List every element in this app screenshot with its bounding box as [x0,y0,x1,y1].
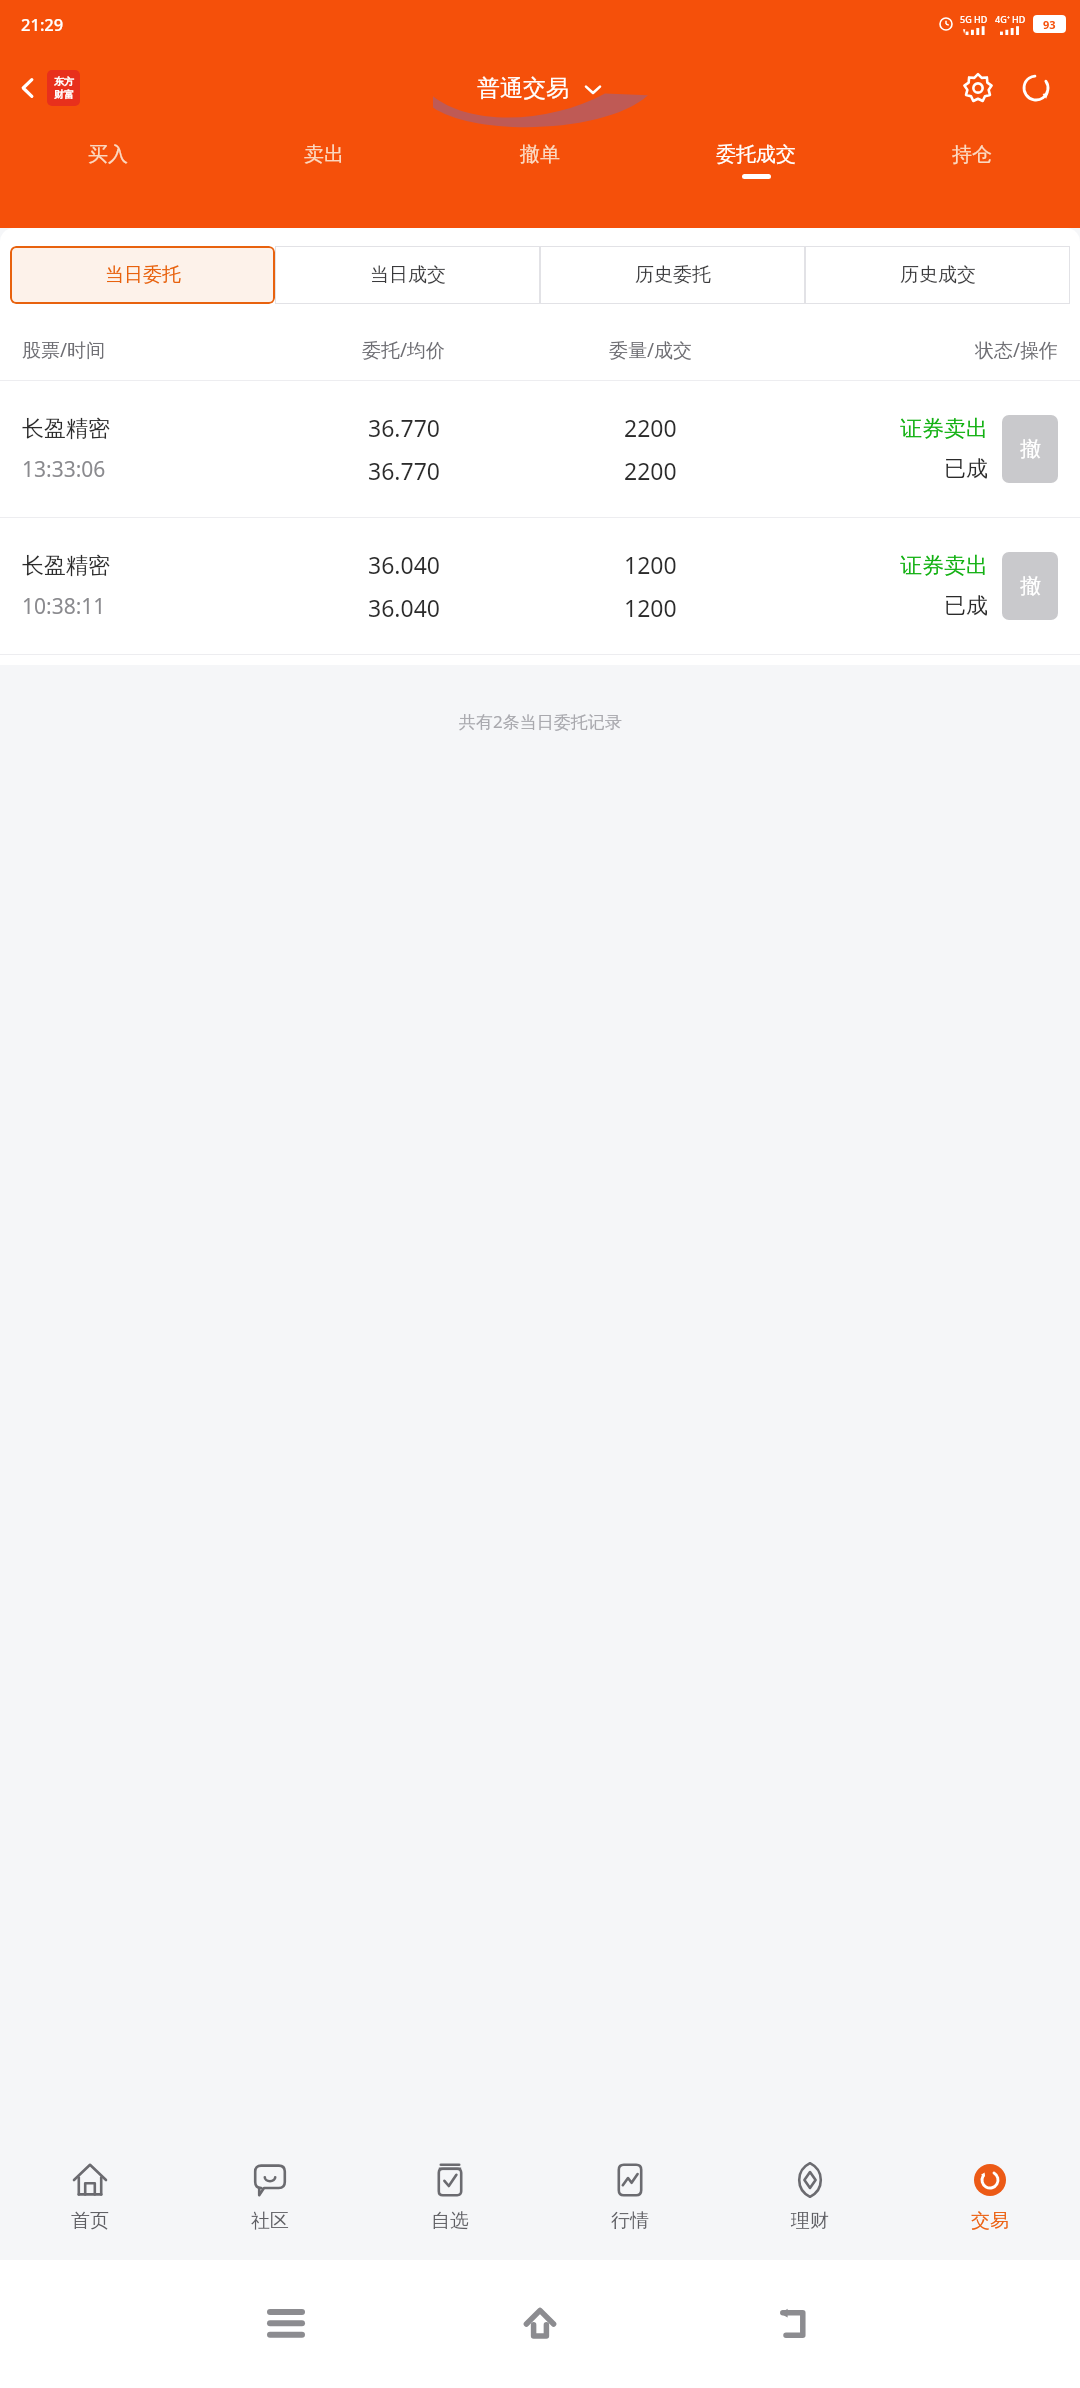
button[interactable]: 历史委托 [540,246,805,304]
staticText: 2200 [624,412,677,443]
button[interactable]: 理财 [720,2132,900,2260]
button[interactable]: 设置 [954,64,1002,112]
button[interactable]: 撤 [1002,552,1058,620]
button[interactable]: 返回 [10,64,86,112]
staticText: 财富 [54,88,74,101]
staticText: 36.040 [368,592,440,623]
staticText: 首页 [71,2209,109,2233]
staticText: 撤 [1020,573,1041,599]
staticText: 卖出 [304,142,344,167]
staticText: 1200 [624,592,677,623]
staticText: 证券卖出 [900,415,988,443]
staticText: 委量/成交 [527,337,774,363]
staticText: 5G [960,13,972,25]
button[interactable]: 委托成交 [648,128,864,228]
button[interactable]: 买入 [0,128,216,228]
staticText: 36.770 [368,455,440,486]
button[interactable]: 主页 [413,2260,667,2388]
staticText: 自选 [431,2209,469,2233]
staticText: 撤单 [520,142,560,167]
staticText: 已成 [944,592,988,620]
staticText: 36.770 [368,412,440,443]
button[interactable]: 首页 [0,2132,180,2260]
staticText: 当日委托 [105,263,181,287]
staticText: 持仓 [952,142,992,167]
staticText: 已成 [944,455,988,483]
staticText: HD [974,13,988,25]
staticText: 10:38:11 [22,592,106,621]
staticText: 委托成交 [716,142,796,167]
staticText: 证券卖出 [900,552,988,580]
staticText: 历史成交 [900,263,976,287]
button[interactable]: 撤单 [432,128,648,228]
staticText: 共有2条当日委托记录 [459,710,622,733]
staticText: 2200 [624,455,677,486]
staticText: 4G⁺ [995,13,1010,25]
staticText: 长盈精密 [22,552,110,580]
staticText: 历史委托 [635,263,711,287]
staticText: 买入 [88,142,128,167]
button[interactable]: 长盈精密 [0,518,1080,654]
button[interactable]: 历史成交 [805,246,1070,304]
staticText: 东方 [54,75,74,88]
staticText: 当日成交 [370,263,446,287]
button[interactable]: 返回 [667,2260,921,2388]
staticText: HD [1012,13,1026,25]
button[interactable]: 社区 [180,2132,360,2260]
staticText: 1200 [624,549,677,580]
staticText: 状态/操作 [774,337,1058,363]
button[interactable]: 最近任务 [159,2260,413,2388]
staticText: 撤 [1020,436,1041,462]
button[interactable]: 卖出 [216,128,432,228]
button[interactable]: 持仓 [864,128,1080,228]
button[interactable]: 刷新 [1012,64,1060,112]
button[interactable]: 撤 [1002,415,1058,483]
staticText: 股票/时间 [22,337,280,363]
staticText: 93 [1043,17,1056,32]
staticText: 13:33:06 [22,455,106,484]
button[interactable]: 长盈精密 [0,381,1080,517]
staticText: 行情 [611,2209,649,2233]
button[interactable]: 普通交易 [477,74,603,103]
button[interactable]: 自选 [360,2132,540,2260]
button[interactable]: 当日成交 [275,246,540,304]
staticText: 36.040 [368,549,440,580]
staticText: 21:29 [21,13,64,35]
staticText: 理财 [791,2209,829,2233]
button[interactable]: 行情 [540,2132,720,2260]
staticText: 长盈精密 [22,415,110,443]
staticText: 委托/均价 [280,337,527,363]
staticText: 社区 [251,2209,289,2233]
button[interactable]: 当日委托 [10,246,275,304]
staticText: 交易 [971,2209,1009,2233]
button[interactable]: 交易 [900,2132,1080,2260]
staticText: 普通交易 [477,74,569,103]
